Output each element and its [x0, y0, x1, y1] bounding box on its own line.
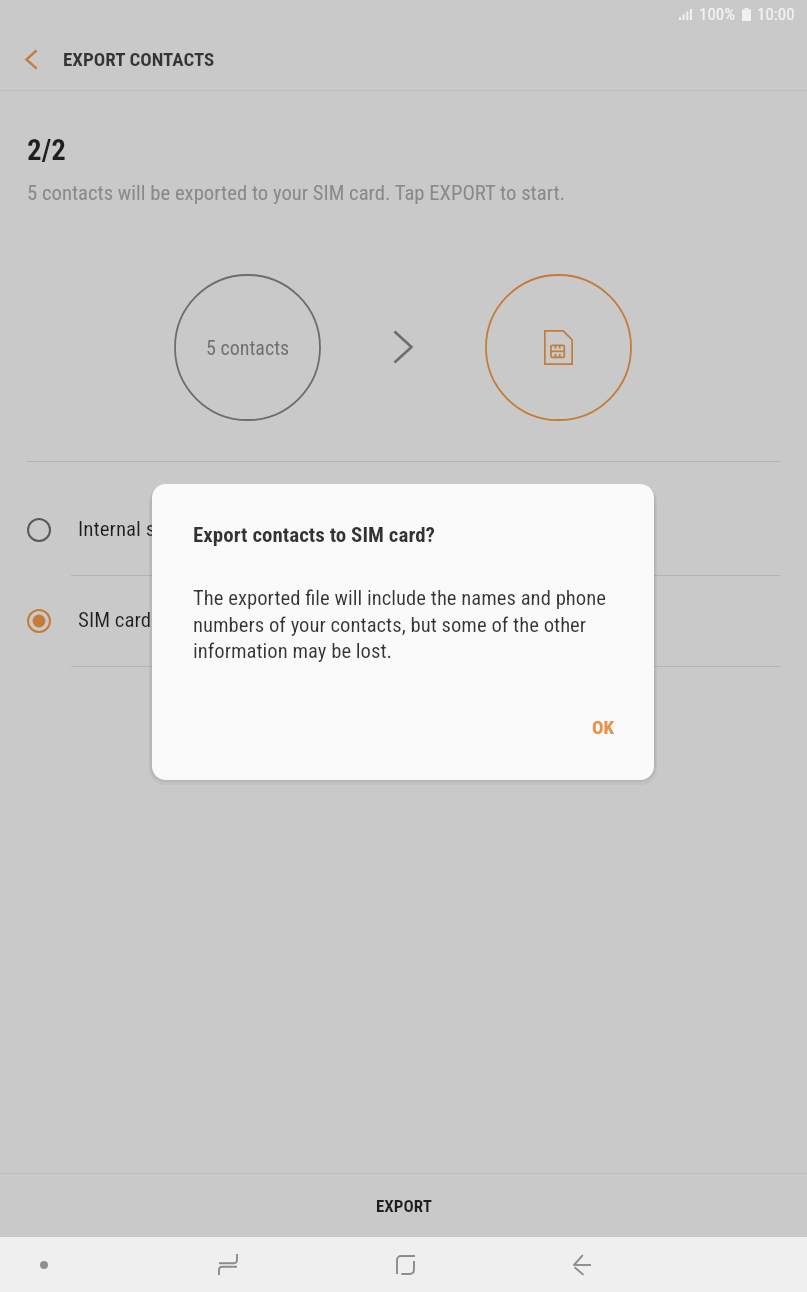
staticText: 5 contacts	[206, 336, 290, 359]
staticText: 10:00	[757, 4, 795, 24]
staticText: 5 contacts will be exported to your SIM …	[27, 181, 566, 205]
staticText: Export contacts to SIM card?	[193, 523, 435, 548]
staticText: Internal storage	[78, 517, 209, 542]
staticText: 2/2	[27, 133, 66, 167]
staticText: OK	[592, 716, 614, 738]
button[interactable]: Menu	[0, 1237, 88, 1292]
button[interactable]: Home	[317, 1237, 493, 1292]
staticText: EXPORT CONTACTS	[63, 48, 215, 70]
button[interactable]: SIM card	[0, 575, 807, 666]
staticText: EXPORT	[376, 1196, 432, 1216]
button[interactable]: Internal storage	[0, 484, 807, 575]
button[interactable]: Navigate up	[0, 28, 62, 90]
staticText: 100%	[699, 4, 735, 24]
button[interactable]: EXPORT	[0, 1174, 807, 1237]
button[interactable]: Back	[494, 1237, 670, 1292]
staticText: The exported file will include the names…	[193, 586, 613, 663]
staticText: SIM card	[78, 608, 152, 633]
button[interactable]: OK	[572, 708, 634, 746]
button[interactable]: Recents	[140, 1237, 316, 1292]
